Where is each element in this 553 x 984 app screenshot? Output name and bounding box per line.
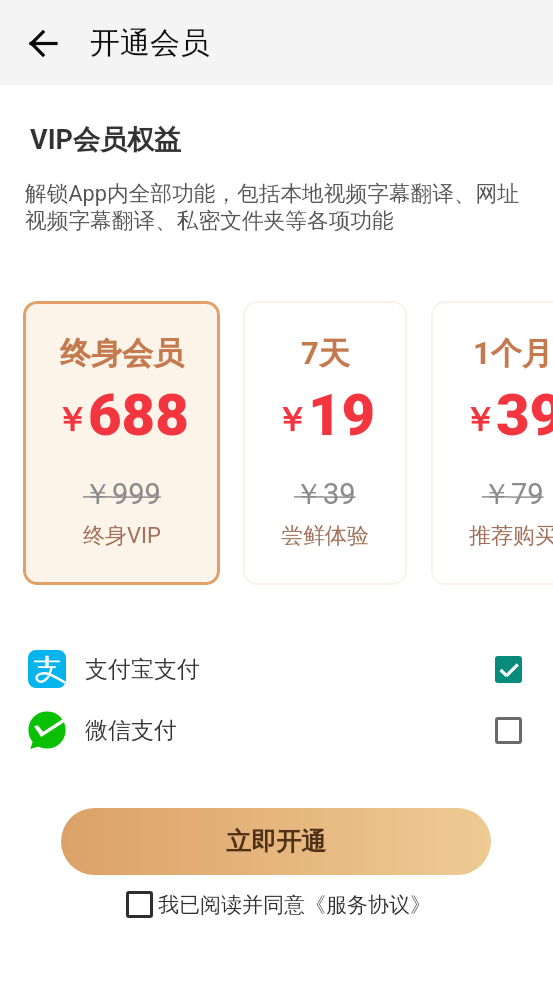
staticText: 开通会员 xyxy=(90,24,210,62)
staticText: 终身VIP xyxy=(83,522,161,550)
button[interactable]: 我已阅读并同意《服务协议》 xyxy=(126,891,431,918)
staticText: 7天 xyxy=(301,334,350,373)
staticText: ￥999 xyxy=(83,476,161,513)
staticText: 我已阅读并同意《服务协议》 xyxy=(158,892,431,918)
staticText: ￥39 xyxy=(294,476,356,513)
button[interactable]: 1个月 xyxy=(431,301,553,585)
button[interactable]: Back xyxy=(19,19,67,67)
staticText: VIP会员权益 xyxy=(30,123,181,157)
staticText: ￥79 xyxy=(482,476,544,513)
staticText: 立即开通 xyxy=(226,826,326,857)
button[interactable]: 终身会员 xyxy=(23,301,220,585)
staticText: 尝鲜体验 xyxy=(281,522,369,550)
staticText: 19 xyxy=(308,381,376,449)
staticText: ￥ xyxy=(55,399,88,441)
staticText: 39 xyxy=(496,381,553,449)
staticText: 解锁App内全部功能，包括本地视频字幕翻译、网址视频字幕翻译、私密文件夹等各项功… xyxy=(25,180,538,234)
staticText: 终身会员 xyxy=(60,334,184,373)
staticText: ￥ xyxy=(275,399,308,441)
button[interactable]: 立即开通 xyxy=(61,808,491,875)
staticText: 推荐购买 xyxy=(469,522,553,550)
staticText: ￥ xyxy=(463,399,496,441)
staticText: 支付宝支付 xyxy=(85,655,200,684)
button[interactable]: 7天 xyxy=(243,301,407,585)
staticText: 1个月 xyxy=(473,334,553,373)
staticText: 微信支付 xyxy=(85,716,177,745)
button[interactable]: 支付宝支付 xyxy=(28,639,522,699)
staticText: 688 xyxy=(88,381,189,449)
button[interactable]: 微信支付 xyxy=(28,700,522,760)
